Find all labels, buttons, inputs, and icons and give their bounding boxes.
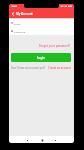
staticText: Password xyxy=(14,30,26,33)
staticText: Email xyxy=(14,22,21,25)
button[interactable]: Create an account xyxy=(48,66,71,70)
staticText: Login xyxy=(37,56,45,60)
button[interactable]: Login xyxy=(11,53,71,62)
button[interactable]: Back xyxy=(9,9,16,18)
staticText: Don't have an account yet? xyxy=(11,66,45,70)
button[interactable]: Home xyxy=(39,136,45,143)
button[interactable]: Forgot your password? xyxy=(39,44,74,48)
button[interactable]: Back xyxy=(24,136,30,143)
button[interactable]: Recents xyxy=(52,136,58,143)
button[interactable]: Password xyxy=(9,27,74,35)
staticText: My Account xyxy=(16,12,33,16)
button[interactable]: Email xyxy=(9,19,74,27)
